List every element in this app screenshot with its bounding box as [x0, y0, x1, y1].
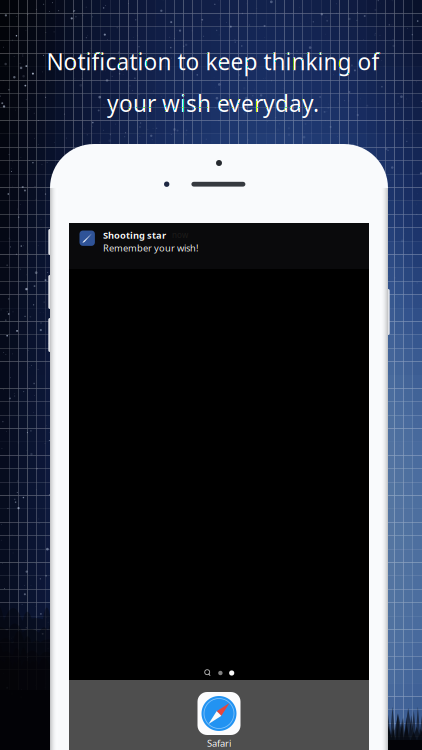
staticText: Safari: [207, 737, 231, 749]
staticText: Shooting star: [103, 229, 166, 241]
button[interactable]: Safari: [197, 692, 240, 749]
staticText: Notification to keep thinking of: [46, 46, 379, 77]
staticText: your wish everyday.: [107, 88, 319, 118]
staticText: now: [172, 230, 188, 240]
staticText: Remember your wish!: [103, 242, 199, 254]
button[interactable]: Shooting star: [69, 223, 369, 269]
